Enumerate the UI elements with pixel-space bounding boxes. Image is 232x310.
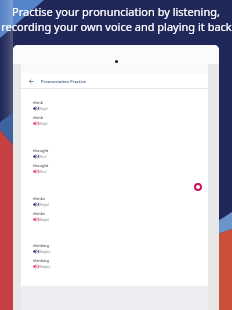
button[interactable]: thought <box>33 148 49 153</box>
staticText: thought <box>33 148 49 153</box>
button[interactable]: Back <box>29 79 34 84</box>
staticText: recording your own voice and playing it … <box>1 19 232 34</box>
button[interactable]: thinking <box>33 258 49 263</box>
button[interactable]: /θɪŋks/ <box>33 202 50 207</box>
staticText: /θɔːt/ <box>39 170 47 174</box>
staticText: /θɪŋkɪŋ/ <box>39 265 51 269</box>
staticText: /θɪŋks/ <box>39 218 50 222</box>
button[interactable]: /θɔːt/ <box>33 154 47 159</box>
staticText: /θɔːt/ <box>39 155 47 159</box>
staticText: think <box>33 100 43 105</box>
button[interactable]: /θɪŋkɪŋ/ <box>33 264 51 269</box>
staticText: thought <box>33 163 49 168</box>
staticText: /θɪŋkɪŋ/ <box>39 250 51 254</box>
button[interactable]: think <box>33 115 43 120</box>
button[interactable]: thinks <box>33 211 45 216</box>
staticText: Practise your pronunciation by listening… <box>12 4 220 19</box>
staticText: /θɪŋk/ <box>39 122 48 126</box>
staticText: thinking <box>33 243 49 248</box>
button[interactable]: thinking <box>33 243 49 248</box>
button[interactable]: think <box>33 100 43 105</box>
button[interactable]: /θɪŋk/ <box>33 106 48 111</box>
staticText: Pronunciation Practice <box>41 79 87 84</box>
button[interactable]: thinks <box>33 196 45 201</box>
staticText: think <box>33 115 43 120</box>
button[interactable]: /θɪŋkɪŋ/ <box>33 249 51 254</box>
button[interactable]: /θɪŋks/ <box>33 217 50 222</box>
staticText: /θɪŋk/ <box>39 107 48 111</box>
button[interactable]: Record <box>194 183 202 191</box>
button[interactable]: /θɪŋk/ <box>33 121 48 126</box>
staticText: thinking <box>33 258 49 263</box>
button[interactable]: thought <box>33 163 49 168</box>
staticText: thinks <box>33 196 45 201</box>
button[interactable]: /θɔːt/ <box>33 169 47 174</box>
staticText: /θɪŋks/ <box>39 203 50 207</box>
staticText: thinks <box>33 211 45 216</box>
button[interactable]: Back <box>21 74 208 88</box>
